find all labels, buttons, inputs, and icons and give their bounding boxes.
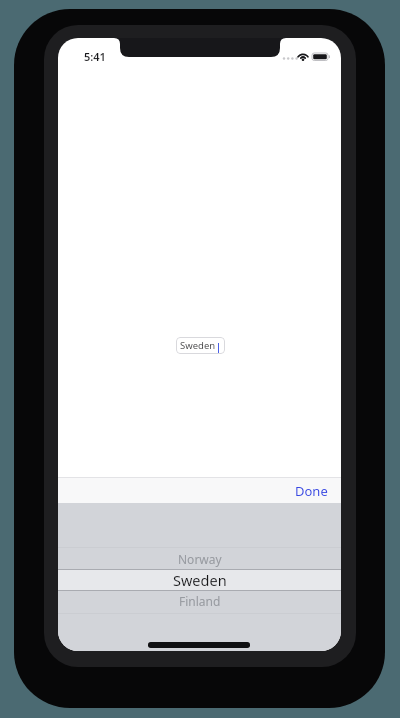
staticText: 5:41 bbox=[84, 49, 106, 64]
staticText: Sweden bbox=[173, 570, 227, 590]
staticText: Norway bbox=[178, 551, 222, 567]
button[interactable]: Done bbox=[282, 477, 341, 503]
staticText: Finland bbox=[179, 593, 221, 609]
button[interactable]: Finland bbox=[58, 590, 341, 611]
staticText: Done bbox=[295, 482, 328, 498]
button[interactable]: Sweden bbox=[58, 569, 341, 590]
staticText: Sweden bbox=[180, 339, 216, 352]
button[interactable]: Sweden bbox=[176, 337, 225, 354]
button[interactable]: Norway bbox=[58, 548, 341, 569]
